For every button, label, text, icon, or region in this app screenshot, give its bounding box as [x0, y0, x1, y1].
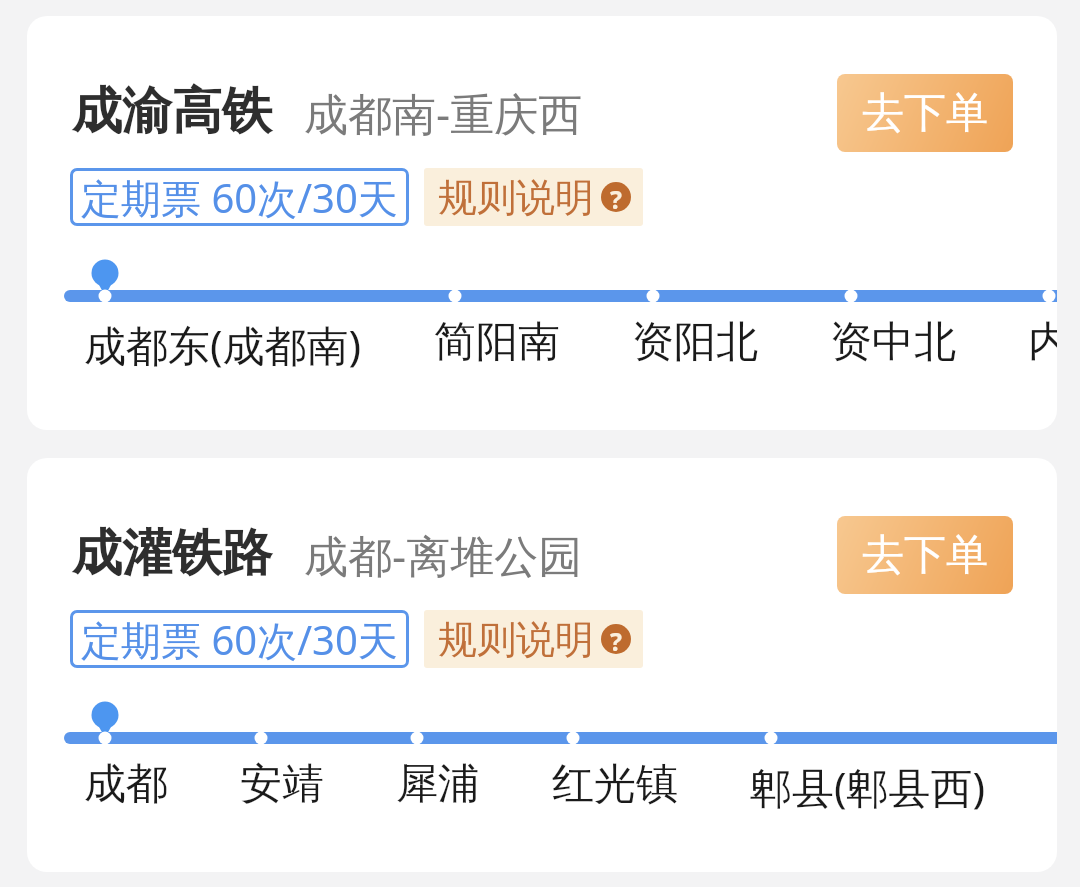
staticText: 简阳南 — [434, 316, 560, 369]
staticText: 成都东(成都南) — [84, 316, 362, 373]
staticText: ? — [610, 182, 622, 212]
staticText: 定期票 60次/30天 — [81, 612, 398, 667]
button[interactable]: 规则说明帮助 — [601, 624, 631, 654]
staticText: 犀浦 — [396, 758, 480, 811]
button[interactable]: 去下单 — [837, 74, 1013, 152]
staticText: 郫县(郫县西) — [750, 758, 986, 815]
staticText: 成都 — [84, 758, 168, 811]
staticText: 成都南-重庆西 — [304, 83, 583, 143]
button[interactable]: 去下单 — [837, 516, 1013, 594]
staticText: 规则说明 — [438, 173, 594, 222]
button[interactable]: 规则说明帮助 — [601, 182, 631, 212]
staticText: ? — [610, 624, 622, 654]
staticText: 定期票 60次/30天 — [81, 170, 398, 225]
button[interactable]: 成渝高铁 — [27, 16, 1057, 430]
staticText: 红光镇 — [552, 758, 678, 811]
staticText: 资阳北 — [632, 316, 758, 369]
button[interactable]: 规则说明 — [438, 168, 631, 226]
staticText: 资中北 — [830, 316, 956, 369]
button[interactable]: 定期票 60次/30天 — [81, 610, 398, 668]
staticText: 成都-离堆公园 — [304, 525, 583, 585]
button[interactable]: 定期票 60次/30天 — [81, 168, 398, 226]
staticText: 规则说明 — [438, 615, 594, 664]
staticText: 成灌铁路 — [72, 522, 272, 585]
staticText: 安靖 — [240, 758, 324, 811]
staticText: 成渝高铁 — [72, 80, 272, 143]
button[interactable]: 成灌铁路 — [27, 458, 1057, 872]
button[interactable]: 规则说明 — [438, 610, 631, 668]
staticText: 内江北 — [1028, 316, 1057, 369]
staticText: 去下单 — [862, 87, 988, 140]
staticText: 去下单 — [862, 529, 988, 582]
